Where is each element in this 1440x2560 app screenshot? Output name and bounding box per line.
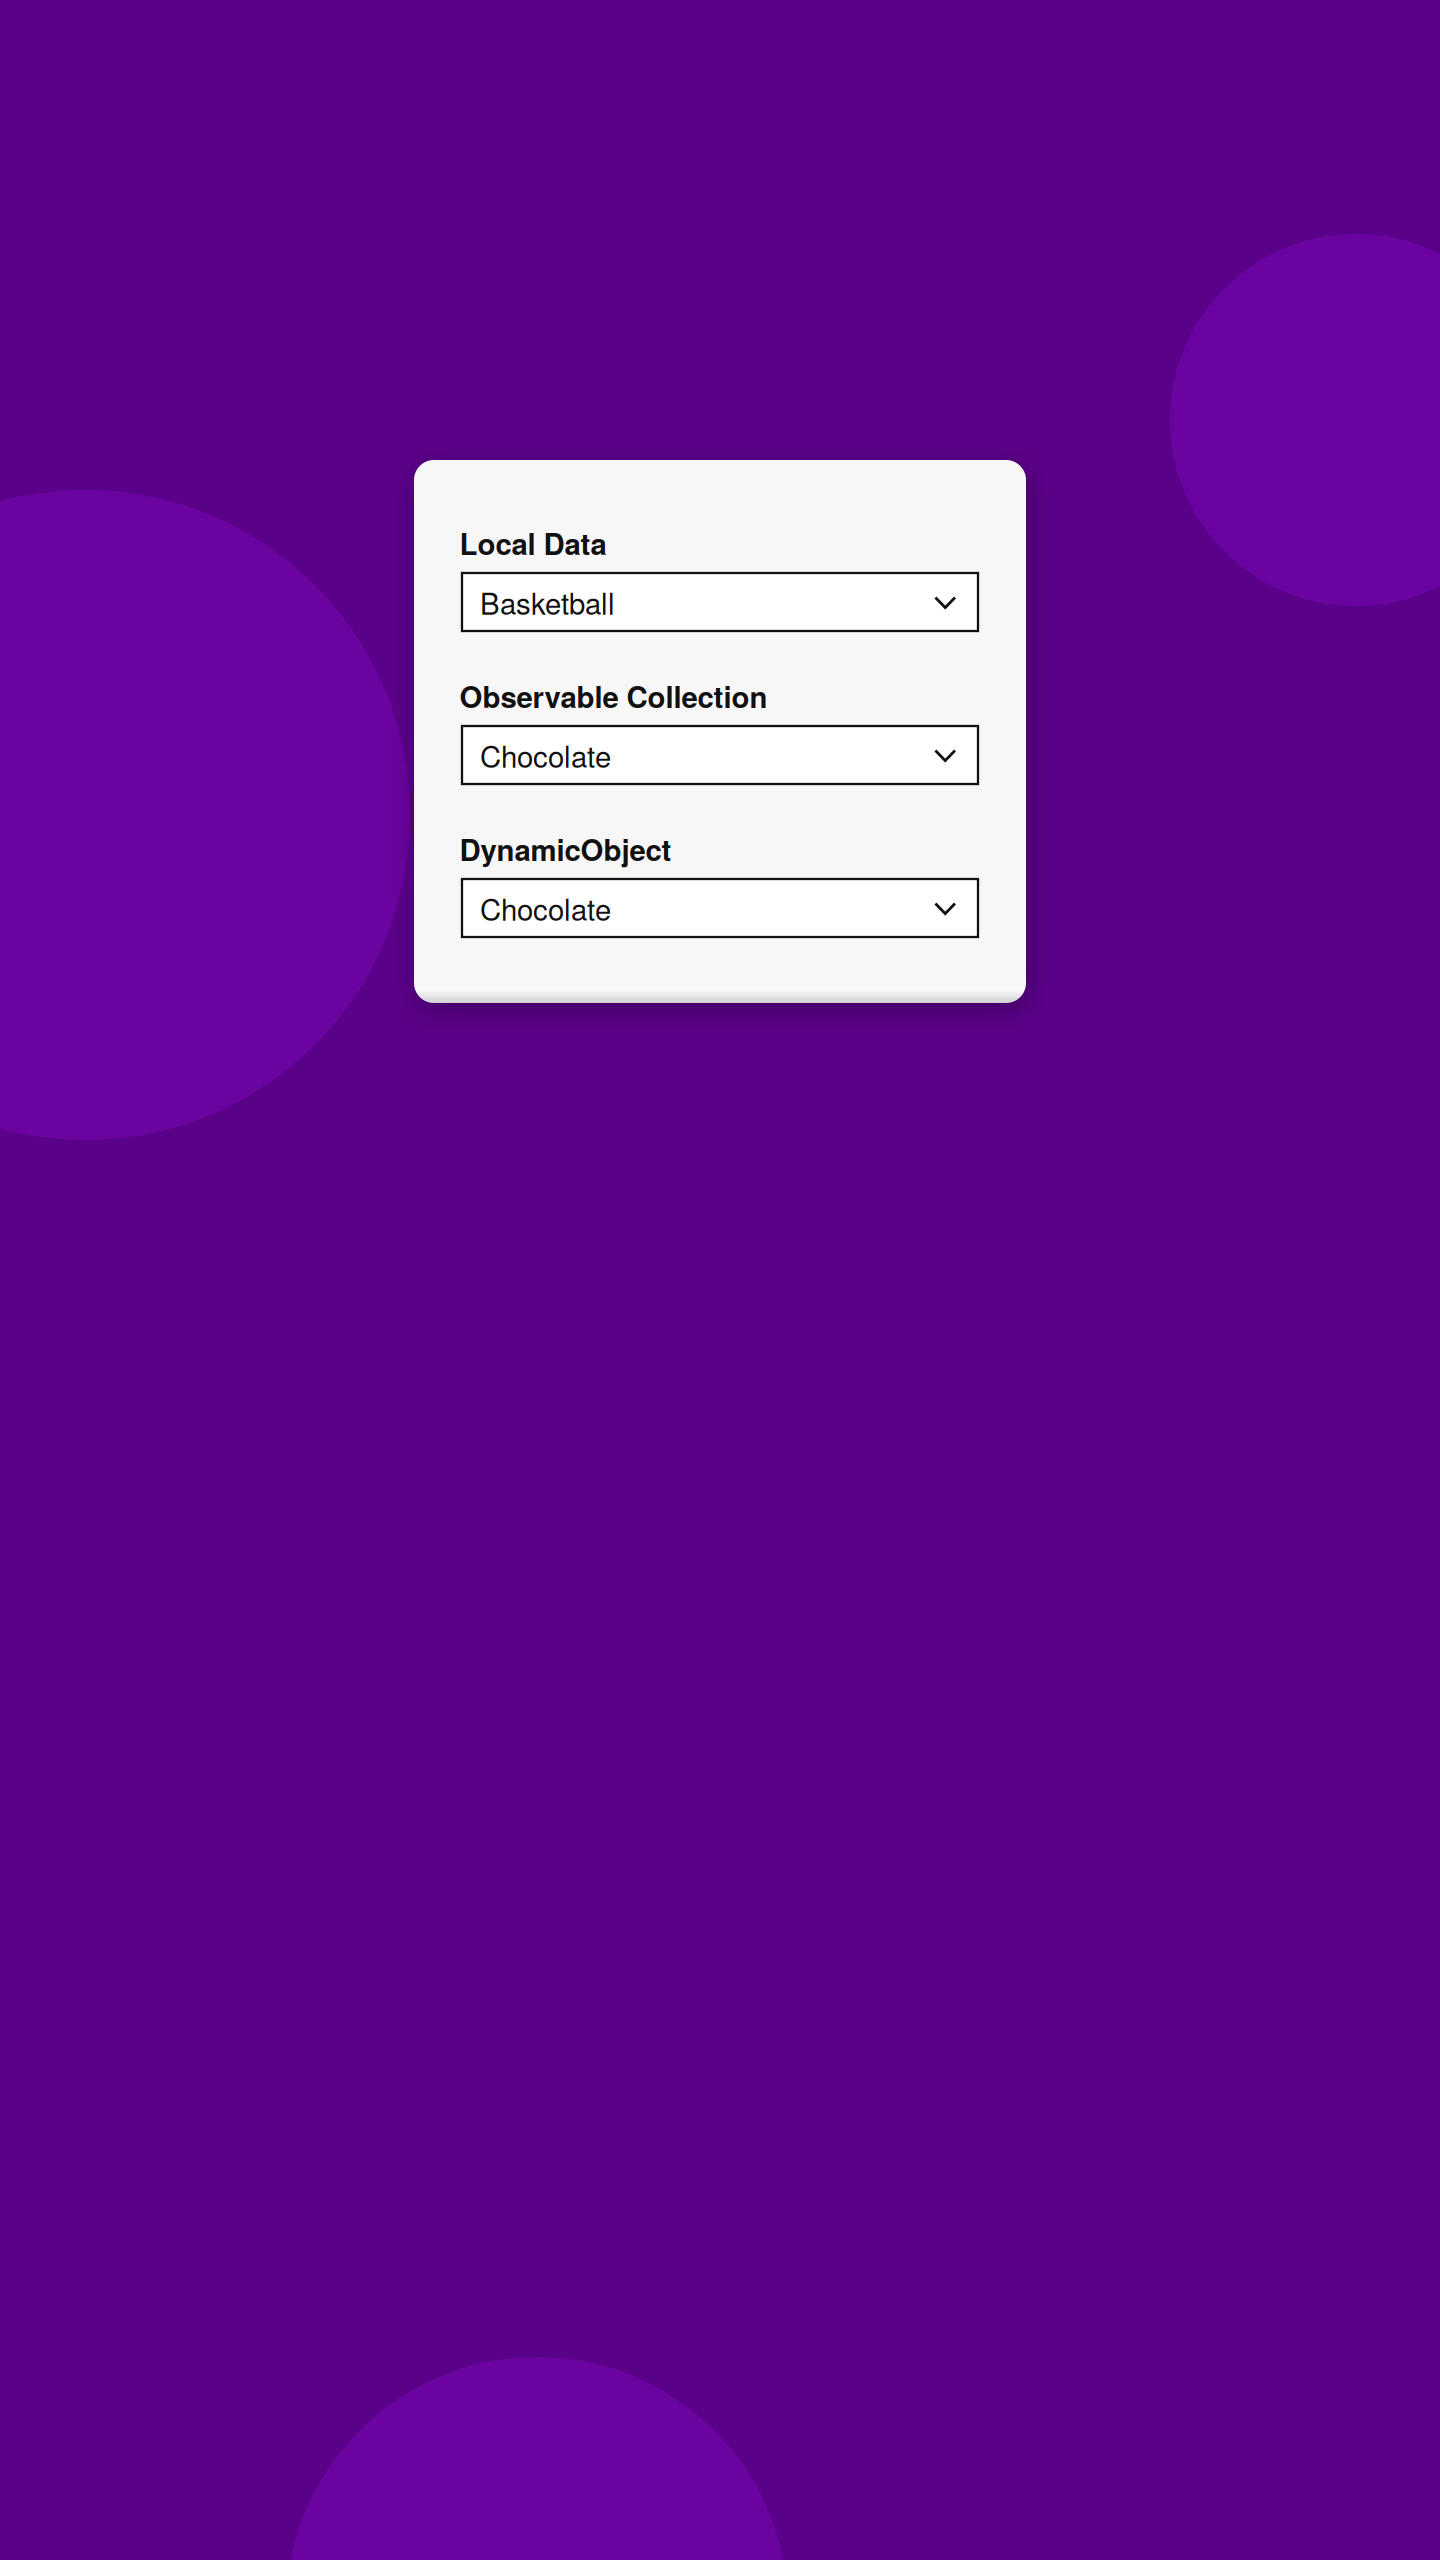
button[interactable]: Observable Collection, Chocolate [462,726,978,784]
staticText: Basketball [480,581,615,623]
button[interactable]: DynamicObject, Chocolate [462,879,978,937]
staticText: Chocolate [480,887,611,929]
staticText: DynamicObject [459,828,671,870]
staticText: Chocolate [480,734,611,776]
button[interactable]: Local Data, Basketball [462,573,978,631]
staticText: Local Data [459,522,606,564]
staticText: Observable Collection [459,675,767,717]
